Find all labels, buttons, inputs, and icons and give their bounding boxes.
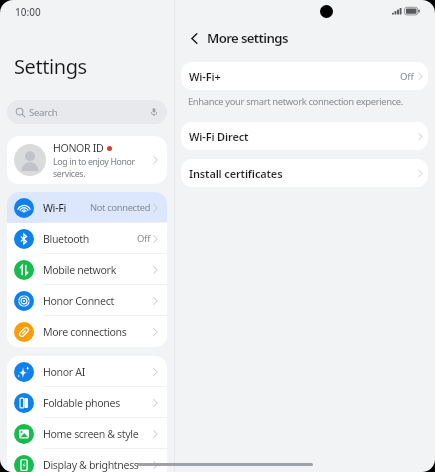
button[interactable]: Honor Connect (7, 285, 167, 316)
button[interactable]: Bluetooth (7, 223, 167, 254)
button[interactable]: Foldable phones (7, 387, 167, 418)
button[interactable]: Wi-Fi Direct (181, 122, 428, 150)
button[interactable]: Install certificates (181, 159, 428, 187)
staticText: Off (400, 70, 414, 83)
button[interactable]: Home screen & style (7, 418, 167, 449)
other: Back (188, 32, 201, 45)
button[interactable]: Wi-Fi+ (181, 62, 428, 90)
staticText: Wi-Fi+ (189, 69, 221, 84)
staticText: Home screen & style (43, 427, 139, 441)
staticText: Off (137, 232, 151, 245)
button[interactable]: Display & brightness (7, 449, 167, 472)
staticText: Wi-Fi Direct (189, 129, 249, 144)
button[interactable]: More connections (7, 316, 167, 347)
staticText: Settings (14, 53, 87, 80)
staticText: Mobile network (43, 263, 116, 277)
staticText: Install certificates (189, 166, 283, 181)
staticText: Log in to enjoy Honor services. (53, 156, 135, 179)
staticText: HONOR ID (53, 141, 104, 155)
staticText: More settings (207, 29, 288, 47)
staticText: 10:00 (15, 5, 41, 19)
button[interactable]: Mobile network (7, 254, 167, 285)
staticText: Honor Connect (43, 294, 114, 308)
staticText: More connections (43, 325, 127, 339)
staticText: Not connected (90, 201, 151, 214)
staticText: Search (29, 106, 58, 119)
staticText: Honor AI (43, 365, 85, 379)
button[interactable]: HONOR ID (7, 136, 167, 184)
button[interactable]: Back (183, 26, 293, 50)
staticText: Foldable phones (43, 396, 120, 410)
button[interactable]: Wi-Fi (7, 192, 167, 223)
button[interactable]: Search (7, 100, 167, 124)
staticText: Bluetooth (43, 232, 90, 246)
staticText: Wi-Fi (43, 201, 66, 215)
staticText: Display & brightness (43, 458, 139, 472)
staticText: Enhance your smart network connection ex… (188, 95, 403, 108)
button[interactable]: Honor AI (7, 356, 167, 387)
